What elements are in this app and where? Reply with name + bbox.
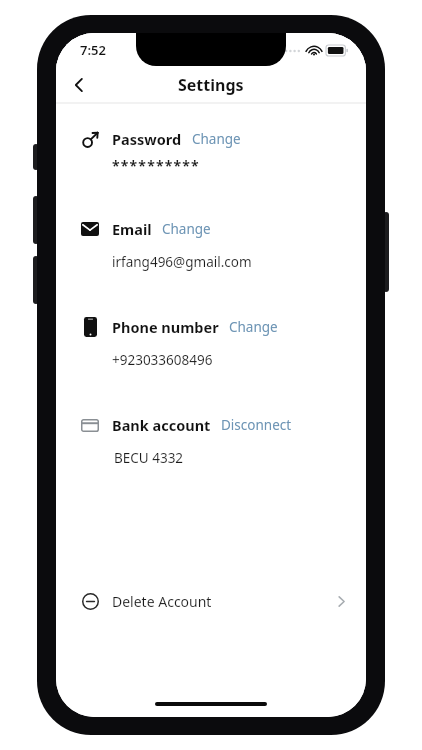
staticText: BECU 4332 <box>114 449 184 467</box>
staticText: Change <box>162 220 211 238</box>
staticText: Email <box>112 219 152 239</box>
staticText: irfang496@gmail.com <box>112 253 252 271</box>
staticText: Settings <box>178 74 244 96</box>
staticText: Phone number <box>112 317 219 337</box>
staticText: Change <box>192 130 241 148</box>
button[interactable]: Change <box>152 216 217 242</box>
staticText: Bank account <box>112 415 211 435</box>
staticText: ********** <box>112 156 200 175</box>
staticText: Delete Account <box>112 592 212 611</box>
staticText: 7:52 <box>80 41 106 59</box>
button[interactable]: Delete Account <box>56 581 366 621</box>
button[interactable]: Change <box>182 126 247 152</box>
button[interactable]: Change <box>219 314 284 340</box>
button[interactable]: Disconnect <box>211 412 298 438</box>
staticText: +923033608496 <box>112 351 213 369</box>
staticText: Password <box>112 129 182 149</box>
button[interactable]: Back <box>62 68 96 102</box>
staticText: Disconnect <box>221 416 292 434</box>
staticText: Change <box>229 318 278 336</box>
